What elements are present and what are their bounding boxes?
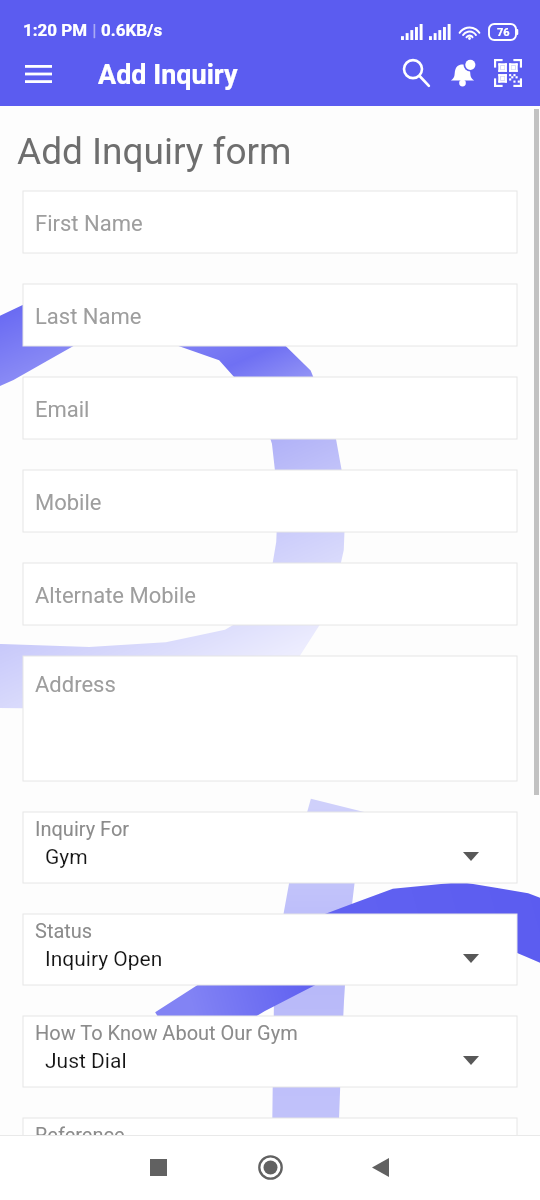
staticText: Inquiry For	[35, 817, 130, 840]
button[interactable]: Recent apps	[132, 1141, 184, 1193]
staticText: Gym	[45, 845, 88, 870]
button[interactable]: Reference	[23, 1118, 517, 1135]
staticText: 1:20 PM	[23, 20, 88, 40]
button[interactable]: Address	[23, 656, 517, 781]
button[interactable]: How To Know About Our Gym	[23, 1016, 517, 1087]
staticText: Just Dial	[45, 1049, 127, 1074]
staticText: Last Name	[35, 304, 142, 330]
button[interactable]: Scan QR code	[485, 50, 531, 96]
button[interactable]: Inquiry For	[23, 812, 517, 883]
staticText: |	[88, 20, 101, 40]
button[interactable]: Status	[23, 914, 517, 985]
button[interactable]: Last Name	[23, 284, 517, 346]
button[interactable]: Email	[23, 377, 517, 439]
staticText: Alternate Mobile	[35, 583, 196, 609]
staticText: Status	[35, 919, 93, 942]
staticText: Email	[35, 397, 90, 423]
staticText: Mobile	[35, 490, 102, 516]
button[interactable]: Home	[244, 1141, 296, 1193]
staticText: Add Inquiry form	[17, 130, 292, 173]
staticText: Reference	[35, 1123, 125, 1135]
staticText: 0.6KB/s	[101, 20, 163, 40]
button[interactable]: Back	[354, 1141, 406, 1193]
button[interactable]: Mobile	[23, 470, 517, 532]
button[interactable]: Search	[393, 50, 439, 96]
button[interactable]: First Name	[23, 191, 517, 253]
staticText: Address	[35, 672, 116, 698]
staticText: First Name	[35, 211, 143, 237]
button[interactable]: Alternate Mobile	[23, 563, 517, 625]
staticText: How To Know About Our Gym	[35, 1021, 298, 1044]
staticText: Inquiry Open	[45, 947, 163, 972]
button[interactable]: Notifications	[439, 50, 485, 96]
button[interactable]: Open navigation menu	[15, 51, 61, 97]
staticText: 76	[497, 26, 510, 39]
staticText: Add Inquiry	[98, 59, 238, 91]
